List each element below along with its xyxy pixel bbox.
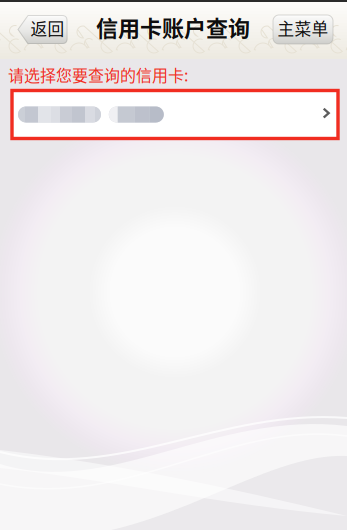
button[interactable]: 主菜单 [273,15,333,44]
staticText: 返回 [30,16,64,40]
button[interactable] [12,90,338,138]
staticText: 主菜单 [277,16,328,40]
button[interactable]: 返回 [17,15,67,44]
staticText: 信用卡账户查询 [96,11,250,43]
staticText: 请选择您要查询的信用卡: [8,63,188,86]
